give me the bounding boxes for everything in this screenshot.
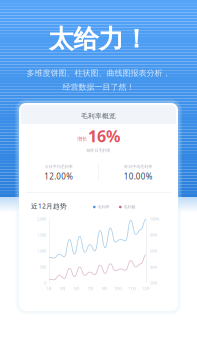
staticText: 昨日平均毛利率: [124, 164, 152, 169]
staticText: 0: [44, 280, 46, 286]
staticText: 5月: [74, 286, 80, 291]
staticText: 较昨日毛利率: [86, 148, 110, 153]
staticText: 毛利率: [98, 204, 110, 209]
staticText: 太给力！: [48, 23, 148, 54]
staticText: 今日平均毛利率: [45, 164, 73, 169]
staticText: 20%: [150, 280, 157, 286]
staticText: 经营数据一目了然！: [62, 82, 134, 92]
staticText: 3月: [60, 286, 66, 291]
staticText: 12月: [142, 286, 150, 291]
staticText: 多维度饼图、柱状图、曲线图报表分析，: [26, 68, 170, 78]
staticText: 增长: [77, 136, 87, 142]
staticText: 10月: [114, 286, 122, 291]
staticText: 毛利额: [124, 204, 136, 209]
staticText: 60%: [150, 248, 157, 254]
staticText: 11月: [128, 286, 136, 291]
staticText: 1,500: [37, 232, 46, 238]
staticText: 80%: [150, 232, 157, 238]
staticText: 1,000: [37, 248, 46, 254]
staticText: 1月: [46, 286, 52, 291]
staticText: 7月: [88, 286, 94, 291]
staticText: 40%: [150, 264, 157, 270]
staticText: 500: [40, 264, 46, 270]
staticText: 近12月趋势: [31, 202, 67, 210]
staticText: 10.00%: [124, 171, 153, 182]
staticText: 12.00%: [44, 171, 73, 182]
staticText: 9月: [101, 286, 107, 291]
staticText: 毛利率概览: [81, 112, 116, 120]
staticText: 2,000: [37, 216, 46, 222]
staticText: 100%: [150, 216, 159, 222]
staticText: 16%: [88, 125, 120, 147]
